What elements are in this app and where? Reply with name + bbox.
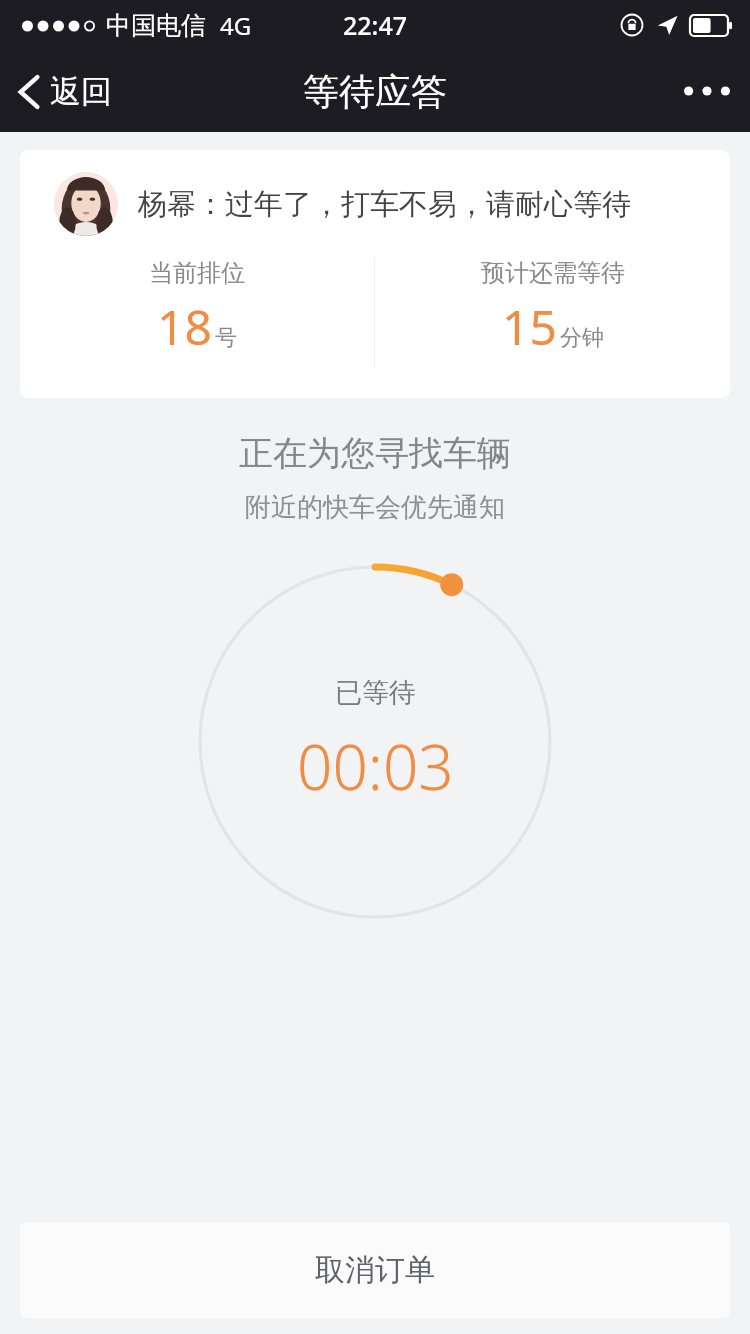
staticText: 杨幂：过年了，打车不易，请耐心等待 [138, 186, 631, 223]
staticText: 附近的快车会优先通知 [0, 491, 750, 524]
staticText: 4G [220, 9, 252, 42]
staticText: 22:47 [343, 8, 408, 42]
staticText: 15 [502, 294, 557, 359]
staticText: 返回 [50, 72, 112, 111]
staticText: 已等待 [335, 676, 416, 710]
staticText: 中国电信 [106, 10, 206, 41]
staticText: 正在为您寻找车辆 [0, 432, 750, 475]
button[interactable]: More options [664, 64, 750, 118]
button[interactable]: 取消订单 [20, 1222, 730, 1318]
staticText: 分钟 [560, 324, 604, 352]
button[interactable]: 返回 [0, 58, 130, 125]
staticText: 号 [215, 324, 237, 352]
button[interactable]: 杨幂：过年了，打车不易，请耐心等待 [20, 150, 730, 398]
staticText: 18 [157, 294, 212, 359]
staticText: 当前排位 [149, 258, 245, 288]
staticText: 预计还需等待 [481, 258, 625, 288]
staticText: 等待应答 [303, 69, 447, 114]
staticText: 取消订单 [315, 1251, 435, 1289]
staticText: 00:03 [297, 724, 454, 808]
